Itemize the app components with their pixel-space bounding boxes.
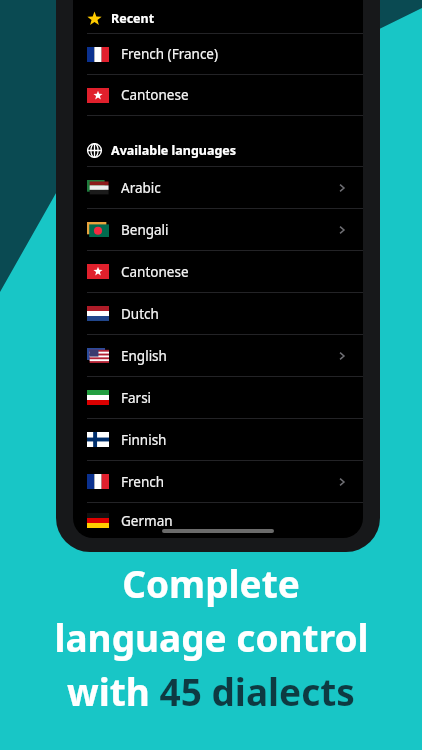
staticText: Bengali <box>121 221 169 239</box>
staticText: Complete <box>122 558 300 608</box>
staticText: Available languages <box>111 142 237 159</box>
staticText: French <box>121 473 165 491</box>
staticText: Cantonese <box>121 86 189 104</box>
button[interactable]: English <box>73 335 363 377</box>
staticText: language control <box>54 612 369 662</box>
staticText: with 45 dialects <box>67 666 355 716</box>
staticText: Cantonese <box>121 263 189 281</box>
button[interactable]: German <box>73 503 363 538</box>
staticText: Recent <box>111 10 155 27</box>
button[interactable]: Bengali <box>73 209 363 251</box>
button[interactable]: Cantonese <box>73 251 363 293</box>
staticText: French (France) <box>121 45 219 63</box>
button[interactable]: Finnish <box>73 419 363 461</box>
button[interactable]: Arabic <box>73 167 363 209</box>
staticText: Finnish <box>121 431 167 449</box>
staticText: German <box>121 512 173 530</box>
button[interactable]: Dutch <box>73 293 363 335</box>
staticText: English <box>121 347 167 365</box>
button[interactable]: French <box>73 461 363 503</box>
button[interactable]: Cantonese <box>73 75 363 116</box>
button[interactable]: French (France) <box>73 34 363 75</box>
staticText: Dutch <box>121 305 159 323</box>
staticText: Farsi <box>121 389 152 407</box>
staticText: Arabic <box>121 179 161 197</box>
button[interactable]: Farsi <box>73 377 363 419</box>
